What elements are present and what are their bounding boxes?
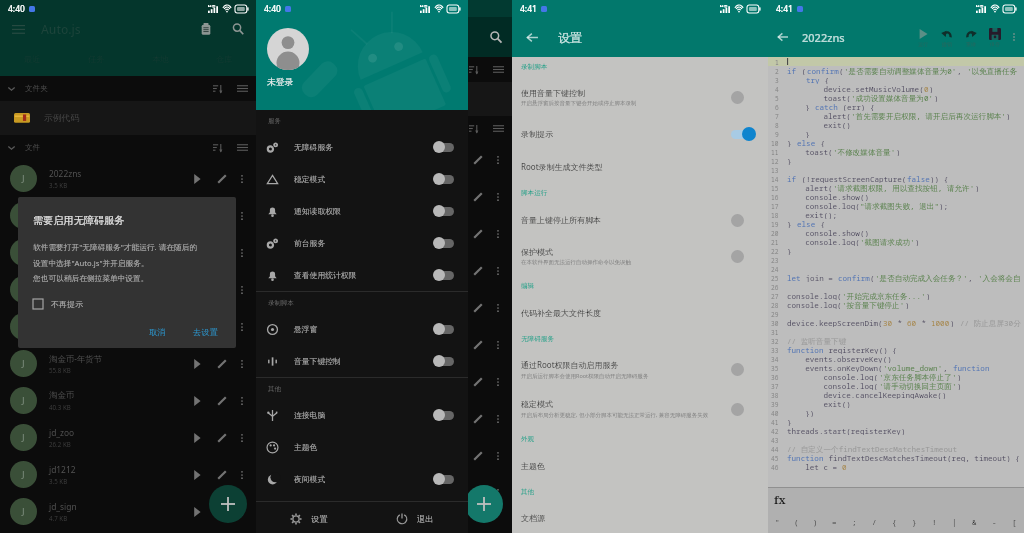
button[interactable]: 设置 bbox=[256, 505, 362, 533]
button[interactable]: More options bbox=[1007, 30, 1021, 44]
button[interactable]: / bbox=[864, 510, 884, 533]
button[interactable]: Log bbox=[195, 18, 217, 40]
button[interactable]: 文档源 bbox=[512, 502, 768, 533]
button[interactable]: 悬浮窗 bbox=[256, 313, 468, 345]
button[interactable]: Edit bbox=[469, 299, 487, 317]
button[interactable]: More bbox=[235, 246, 249, 260]
button[interactable]: Run bbox=[911, 17, 934, 57]
button[interactable]: More bbox=[235, 431, 249, 445]
button[interactable]: J bbox=[256, 289, 512, 326]
button[interactable]: Edit bbox=[469, 225, 487, 243]
button[interactable]: Edit bbox=[469, 484, 487, 502]
button[interactable]: - bbox=[984, 510, 1004, 533]
button[interactable]: More bbox=[235, 320, 249, 334]
button[interactable]: Add bbox=[209, 485, 247, 523]
button[interactable]: 稳定模式 bbox=[512, 389, 768, 429]
button[interactable]: 夜间模式 bbox=[256, 463, 468, 495]
button[interactable]: Run bbox=[444, 151, 462, 169]
button[interactable]: More bbox=[235, 394, 249, 408]
button[interactable]: Edit bbox=[213, 355, 231, 373]
button[interactable]: Function bbox=[774, 488, 1024, 510]
button[interactable]: More bbox=[491, 264, 505, 278]
button[interactable]: Run bbox=[188, 318, 206, 336]
button[interactable]: 音量上键停止所有脚本 bbox=[512, 203, 768, 236]
button[interactable]: More bbox=[235, 357, 249, 371]
button[interactable]: Save bbox=[983, 17, 1006, 57]
button[interactable]: 前台服务 bbox=[256, 227, 468, 259]
button[interactable]: 去设置 bbox=[188, 326, 223, 338]
button[interactable]: More bbox=[491, 375, 505, 389]
button[interactable]: J bbox=[256, 326, 512, 363]
button[interactable]: Add bbox=[465, 485, 503, 523]
button[interactable]: ( bbox=[787, 510, 806, 533]
button[interactable]: { bbox=[884, 510, 904, 533]
button[interactable]: & bbox=[964, 510, 984, 533]
button[interactable]: ! bbox=[924, 510, 944, 533]
button[interactable]: Edit bbox=[213, 392, 231, 410]
button[interactable]: 取消 bbox=[144, 326, 171, 338]
button[interactable]: J bbox=[0, 308, 256, 345]
button[interactable]: Run bbox=[444, 484, 462, 502]
button[interactable]: Edit bbox=[213, 429, 231, 447]
button[interactable]: Run bbox=[188, 466, 206, 484]
button[interactable]: J bbox=[256, 363, 512, 400]
button[interactable]: 通知读取权限 bbox=[256, 195, 468, 227]
button[interactable]: 保护模式 bbox=[512, 236, 768, 276]
button[interactable]: Run bbox=[188, 429, 206, 447]
button[interactable]: Edit bbox=[469, 262, 487, 280]
button[interactable]: Back bbox=[522, 27, 542, 47]
button[interactable]: 通过Root权限自动启用服务 bbox=[512, 349, 768, 389]
button[interactable]: Run bbox=[444, 410, 462, 428]
button[interactable]: 主题色 bbox=[256, 431, 468, 463]
button[interactable]: 退出 bbox=[362, 505, 468, 533]
button[interactable]: More bbox=[235, 468, 249, 482]
button[interactable]: ) bbox=[806, 510, 825, 533]
button[interactable]: J bbox=[0, 419, 256, 456]
button[interactable]: 示例代码 bbox=[0, 101, 256, 135]
button[interactable]: J bbox=[256, 252, 512, 289]
button[interactable]: " bbox=[768, 510, 787, 533]
button[interactable]: J bbox=[256, 474, 512, 511]
button[interactable]: 连接电脑 bbox=[256, 399, 468, 431]
button[interactable]: More bbox=[235, 209, 249, 223]
button[interactable]: Edit bbox=[469, 336, 487, 354]
button[interactable]: } bbox=[904, 510, 924, 533]
button[interactable]: Edit bbox=[213, 466, 231, 484]
button[interactable]: 查看使用统计权限 bbox=[256, 259, 468, 291]
button[interactable]: J bbox=[256, 437, 512, 474]
button[interactable]: J bbox=[0, 197, 256, 234]
button[interactable]: [ bbox=[1004, 510, 1024, 533]
button[interactable]: More bbox=[491, 227, 505, 241]
button[interactable]: Edit bbox=[469, 188, 487, 206]
button[interactable]: J bbox=[256, 215, 512, 252]
button[interactable]: J bbox=[256, 400, 512, 437]
button[interactable]: Undo bbox=[935, 17, 958, 57]
button[interactable]: ; bbox=[844, 510, 864, 533]
button[interactable]: Run bbox=[444, 373, 462, 391]
button[interactable]: More bbox=[235, 505, 249, 519]
button[interactable]: Edit bbox=[469, 447, 487, 465]
button[interactable]: Run bbox=[188, 392, 206, 410]
button[interactable]: Run bbox=[188, 244, 206, 262]
button[interactable]: Edit bbox=[213, 170, 231, 188]
button[interactable]: 录制提示 bbox=[512, 117, 768, 150]
button[interactable]: Edit bbox=[213, 503, 231, 521]
button[interactable]: J bbox=[0, 345, 256, 382]
button[interactable]: More bbox=[491, 449, 505, 463]
button[interactable]: More bbox=[491, 190, 505, 204]
button[interactable]: Run bbox=[444, 225, 462, 243]
button[interactable]: More bbox=[491, 412, 505, 426]
button[interactable]: Run bbox=[444, 262, 462, 280]
button[interactable]: 稳定模式 bbox=[256, 163, 468, 195]
button[interactable]: J bbox=[0, 493, 256, 530]
button[interactable]: Menu bbox=[7, 18, 29, 40]
button[interactable]: More bbox=[491, 486, 505, 500]
